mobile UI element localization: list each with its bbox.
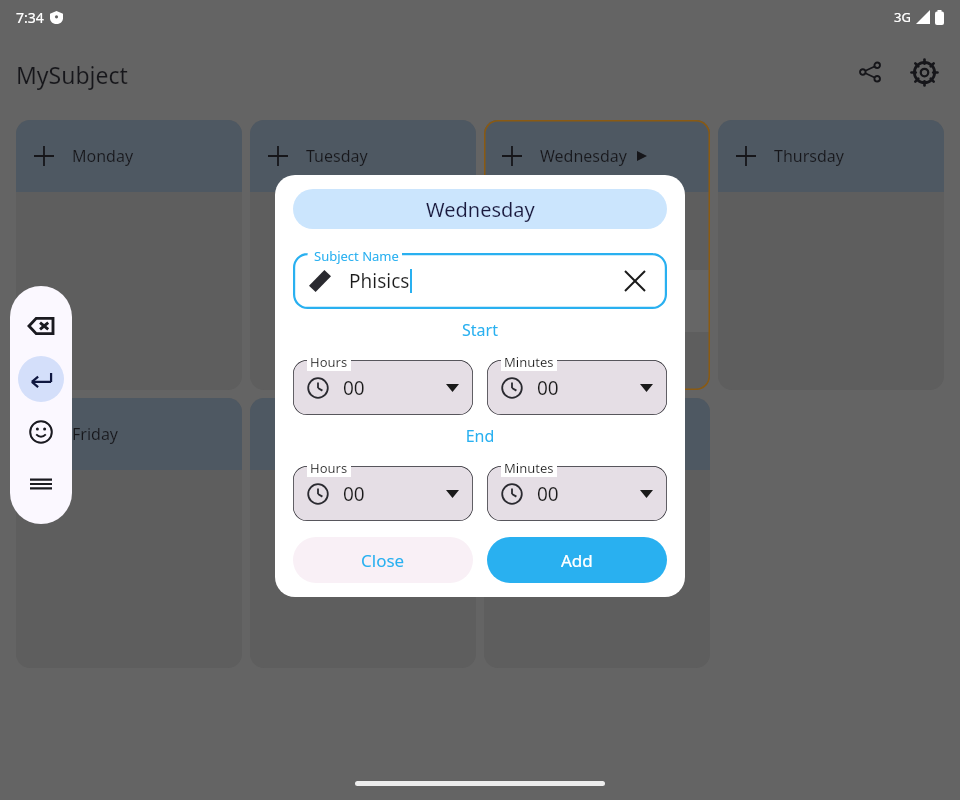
button[interactable]: Share [846, 48, 894, 96]
button[interactable]: Monday [16, 120, 242, 192]
staticText: Start [293, 319, 667, 341]
button[interactable]: Phisics [293, 253, 667, 309]
staticText: Wednesday [426, 196, 535, 223]
staticText: Hours [310, 353, 348, 371]
staticText: MySubject [16, 59, 128, 90]
staticText: Wednesday [540, 145, 627, 167]
button[interactable]: Settings [900, 48, 948, 96]
button[interactable]: Emoji [19, 410, 63, 454]
button[interactable]: Enter [18, 356, 64, 402]
button[interactable]: Thursday [718, 120, 944, 192]
staticText: 00 [537, 375, 559, 401]
staticText: Hours [310, 459, 348, 477]
staticText: End [293, 425, 667, 447]
button[interactable] [250, 398, 476, 470]
button[interactable]: 00 [293, 360, 473, 415]
button[interactable]: 00 [293, 466, 473, 521]
button[interactable]: Clear [619, 265, 651, 297]
button[interactable]: Menu [19, 462, 63, 506]
button[interactable]: Close [293, 537, 473, 583]
button[interactable] [484, 398, 710, 470]
staticText: 00 [343, 481, 365, 507]
button[interactable]: Backspace [19, 304, 63, 348]
staticText: 7:34 [16, 8, 44, 27]
staticText: Tuesday [306, 145, 368, 167]
button[interactable]: Tuesday [250, 120, 476, 192]
staticText: Subject Name [314, 247, 399, 265]
staticText: Minutes [504, 459, 554, 477]
button[interactable]: Wednesday [484, 120, 710, 192]
staticText: 3G [894, 8, 911, 26]
staticText: Friday [72, 423, 119, 445]
staticText: Minutes [504, 353, 554, 371]
button[interactable]: 00 [487, 466, 667, 521]
staticText: 00 [343, 375, 365, 401]
button[interactable]: Add [487, 537, 667, 583]
staticText: Add [561, 549, 593, 572]
staticText: Thursday [774, 145, 844, 167]
staticText: Close [361, 549, 405, 572]
staticText: Monday [72, 145, 134, 167]
staticText: Phisics [349, 268, 410, 294]
button[interactable]: Friday [16, 398, 242, 470]
button[interactable]: 00 [487, 360, 667, 415]
staticText: 00 [537, 481, 559, 507]
